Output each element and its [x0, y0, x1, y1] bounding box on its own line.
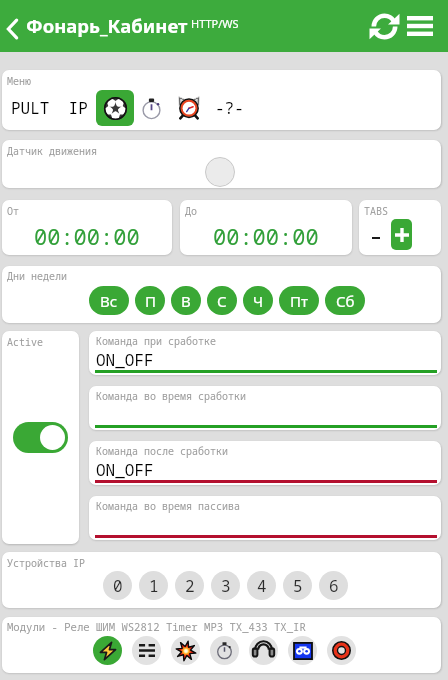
button[interactable]: 1	[139, 571, 168, 600]
button[interactable]: Вс	[89, 286, 129, 315]
button[interactable]: 4	[247, 571, 276, 600]
button[interactable]: Active toggle	[13, 422, 68, 453]
staticText: ON_OFF	[96, 349, 154, 371]
button[interactable]: Add tab	[391, 219, 412, 250]
staticText: Пт	[290, 291, 308, 311]
staticText: 5	[293, 575, 303, 597]
staticText: Фонарь_Кабинет	[26, 13, 188, 38]
staticText: -?-	[215, 97, 244, 119]
button[interactable]: П	[135, 286, 165, 315]
staticText: Устройства IP	[7, 556, 85, 570]
staticText: Модули - Реле ШИМ WS2812 Timer MP3 TX_43…	[7, 620, 306, 634]
button[interactable]: WS2812	[171, 636, 200, 665]
staticText: PULT IP	[11, 97, 88, 119]
button[interactable]: В	[171, 286, 201, 315]
staticText: Вс	[100, 291, 118, 311]
button[interactable]: 6	[319, 571, 348, 600]
staticText: Датчик движения	[7, 144, 97, 158]
button[interactable]: Relay	[93, 636, 122, 665]
button[interactable]: Timer	[210, 636, 239, 665]
staticText: 2	[185, 575, 195, 597]
staticText: Ч	[253, 291, 264, 311]
button[interactable]: С	[207, 286, 237, 315]
button[interactable]: Команда после сработки	[89, 441, 441, 485]
button[interactable]: TX 433	[288, 636, 317, 665]
button[interactable]: 0	[103, 571, 132, 600]
staticText: 00:00:00	[34, 221, 140, 251]
button[interactable]: От	[2, 200, 172, 255]
staticText: TABS	[364, 204, 388, 218]
button[interactable]: Remove tab	[365, 228, 387, 248]
button[interactable]: Команда при сработке	[89, 331, 441, 375]
staticText: 4	[257, 575, 267, 597]
button[interactable]: Сб	[325, 286, 365, 315]
button[interactable]: 5	[283, 571, 312, 600]
button[interactable]: До	[180, 200, 352, 255]
button[interactable]: TX IR	[327, 636, 356, 665]
button[interactable]: 3	[211, 571, 240, 600]
button[interactable]: Timer	[139, 92, 164, 124]
staticText: 1	[149, 575, 159, 597]
staticText: ON_OFF	[96, 459, 154, 481]
staticText: 6	[329, 575, 339, 597]
button[interactable]: PWM	[132, 636, 161, 665]
staticText: Команда после сработки	[96, 444, 228, 458]
staticText: 3	[221, 575, 231, 597]
staticText: HTTP/WS	[191, 16, 239, 31]
button[interactable]: 2	[175, 571, 204, 600]
button[interactable]: Команда во время сработки	[89, 386, 441, 430]
button[interactable]: Ball mode	[96, 90, 134, 126]
staticText: До	[185, 204, 197, 218]
staticText: Меню	[7, 74, 31, 88]
staticText: Команда при сработке	[96, 334, 216, 348]
staticText: Дни недели	[7, 269, 67, 283]
staticText: С	[217, 291, 227, 311]
button[interactable]: Menu	[404, 14, 436, 38]
staticText: Active	[7, 335, 43, 349]
staticText: Сб	[336, 291, 355, 311]
staticText: П	[145, 291, 156, 311]
button[interactable]: Refresh	[369, 11, 399, 41]
staticText: Команда во время сработки	[96, 389, 246, 403]
staticText: Команда во время пассива	[96, 499, 240, 513]
staticText: 00:00:00	[213, 221, 319, 251]
staticText: 0	[113, 575, 123, 597]
button[interactable]: Команда во время пассива	[89, 496, 441, 540]
button[interactable]: Motion sensor	[205, 157, 235, 187]
button[interactable]: Alarm	[174, 91, 203, 123]
button[interactable]: Пт	[279, 286, 319, 315]
staticText: От	[7, 204, 19, 218]
staticText: В	[181, 291, 191, 311]
button[interactable]: Ч	[243, 286, 273, 315]
button[interactable]: Back	[0, 17, 24, 41]
button[interactable]: MP3	[249, 636, 278, 665]
